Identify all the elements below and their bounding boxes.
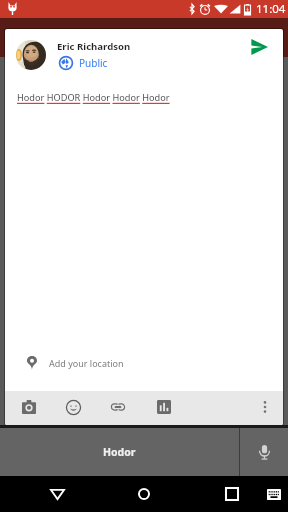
staticText: 11:04 — [256, 1, 286, 17]
button[interactable]: Recents — [208, 476, 256, 512]
button[interactable]: Add emoji — [66, 400, 81, 415]
button[interactable]: More options — [255, 397, 275, 417]
button[interactable]: Send — [241, 29, 277, 65]
button[interactable]: Public — [59, 56, 108, 70]
button[interactable]: Hodor — [0, 428, 239, 476]
button[interactable]: Add your location — [5, 349, 283, 377]
button[interactable]: Add poll — [157, 400, 171, 414]
button[interactable]: Home — [120, 476, 168, 512]
staticText: Add your location — [49, 357, 124, 369]
staticText: Public — [79, 56, 108, 70]
button[interactable]: Hodor HODOR Hodor Hodor Hodor — [17, 91, 170, 104]
button[interactable]: Switch keyboard — [258, 476, 288, 512]
button[interactable]: Add photo — [22, 400, 36, 414]
staticText: Eric Richardson — [57, 40, 131, 53]
button[interactable]: Add link — [111, 400, 125, 414]
staticText: Hodor — [103, 445, 136, 459]
button[interactable]: Back — [33, 476, 81, 512]
button[interactable]: Voice input — [240, 428, 288, 476]
